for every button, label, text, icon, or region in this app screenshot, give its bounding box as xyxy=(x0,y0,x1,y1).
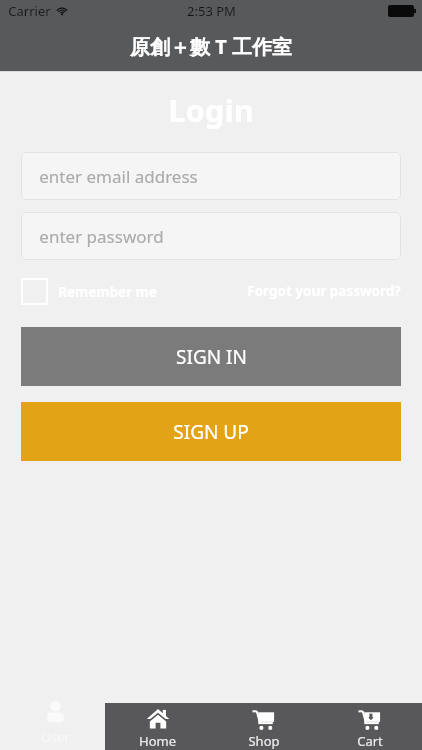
staticText: Cart xyxy=(357,732,383,750)
button[interactable]: SIGN UP xyxy=(21,402,401,461)
button[interactable]: enter password xyxy=(21,212,401,260)
staticText: Forgot your password? xyxy=(247,282,401,300)
button[interactable]: Forgot your password? xyxy=(247,282,401,300)
button[interactable]: enter email address xyxy=(21,152,401,200)
button[interactable]: Remember me xyxy=(21,278,157,305)
staticText: enter email address xyxy=(39,165,198,188)
staticText: Carrier xyxy=(8,2,51,20)
button[interactable]: Home xyxy=(105,703,210,750)
staticText: Remember me xyxy=(58,283,157,301)
staticText: 2:53 PM xyxy=(187,2,236,20)
staticText: 原創＋數 T 工作室 xyxy=(130,33,292,60)
staticText: Home xyxy=(139,732,176,750)
staticText: enter password xyxy=(39,225,164,248)
staticText: SIGN UP xyxy=(173,419,249,445)
button[interactable]: Cart xyxy=(317,703,422,750)
staticText: SIGN IN xyxy=(176,344,247,370)
staticText: Shop xyxy=(248,732,280,750)
button[interactable]: Shop xyxy=(211,703,316,750)
button[interactable]: SIGN IN xyxy=(21,327,401,386)
staticText: Login xyxy=(168,89,254,131)
